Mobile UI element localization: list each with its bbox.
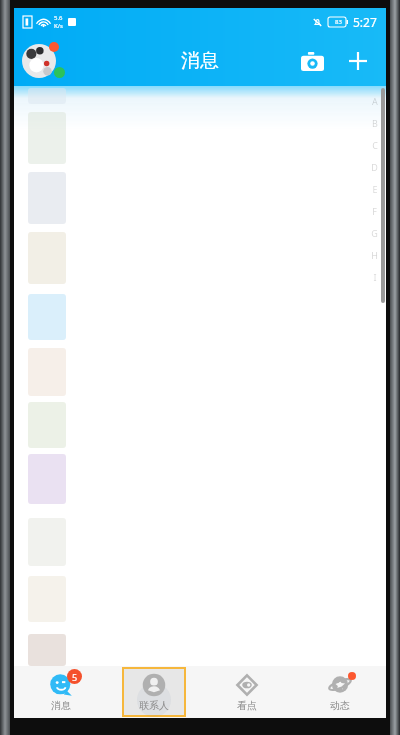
button[interactable]: Camera [294,43,330,79]
staticText: F [372,205,377,217]
staticText: I [373,271,377,283]
button[interactable]: 看点 [200,666,293,718]
staticText: B [372,117,378,129]
staticText: 联系人 [139,699,169,712]
staticText: 83 [335,18,342,26]
staticText: E [372,183,378,195]
button[interactable]: 动态 [293,666,386,718]
staticText: 5.6 [54,14,63,22]
staticText: 动态 [330,699,350,712]
button[interactable]: Add [340,43,376,79]
staticText: H [371,249,378,261]
staticText: G [371,227,378,239]
staticText: C [372,139,378,151]
staticText: 消息 [181,49,219,73]
staticText: 看点 [237,699,257,712]
staticText: 5:27 [353,14,377,30]
button[interactable]: 联系人 [107,666,200,718]
staticText: 5 [72,671,78,683]
staticText: 消息 [51,699,71,712]
staticText: K/s [54,22,63,30]
staticText: D [371,161,378,173]
staticText: A [372,95,378,107]
button[interactable]: Profile [22,41,62,81]
button[interactable]: 5 [14,666,107,718]
